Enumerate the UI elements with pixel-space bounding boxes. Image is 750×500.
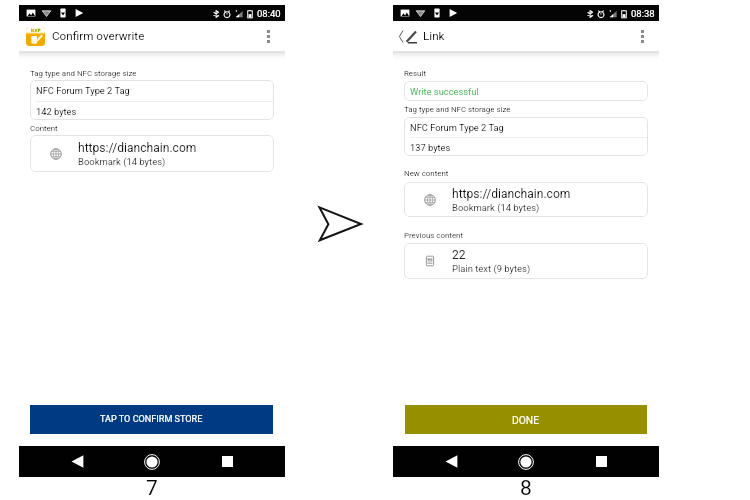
staticText: 8 xyxy=(520,476,532,497)
staticText: https://dianchain.com xyxy=(78,141,197,155)
staticText: Previous content xyxy=(404,231,464,240)
button[interactable]: Back and edit xyxy=(398,24,420,48)
staticText: Plain text (9 bytes) xyxy=(452,263,531,274)
button[interactable]: Recents xyxy=(576,446,626,477)
staticText: 08:38 xyxy=(631,8,655,19)
button[interactable]: More options xyxy=(630,22,654,50)
staticText: New content xyxy=(404,169,449,178)
button[interactable]: https://dianchain.com xyxy=(404,182,648,217)
staticText: Content xyxy=(30,124,58,133)
staticText: NFC Forum Type 2 Tag xyxy=(36,85,130,96)
button[interactable]: Home xyxy=(127,446,177,477)
staticText: Confirm overwrite xyxy=(52,29,145,43)
button[interactable]: Write successful xyxy=(404,81,648,101)
button[interactable]: DONE xyxy=(405,405,647,434)
staticText: 142 bytes xyxy=(36,106,77,117)
staticText: Bookmark (14 bytes) xyxy=(78,156,166,167)
button[interactable]: Home xyxy=(501,446,551,477)
staticText: DONE xyxy=(512,414,540,426)
button[interactable]: Back xyxy=(52,446,102,477)
staticText: 7 xyxy=(146,476,158,497)
button[interactable]: Back xyxy=(426,446,476,477)
staticText: Tag type and NFC storage size xyxy=(404,105,511,114)
button[interactable]: Recents xyxy=(202,446,252,477)
staticText: Bookmark (14 bytes) xyxy=(452,202,540,213)
button[interactable]: https://dianchain.com xyxy=(30,135,274,172)
staticText: TAP TO CONFIRM STORE xyxy=(100,414,203,425)
staticText: Write successful xyxy=(410,86,479,97)
staticText: Tag type and NFC storage size xyxy=(30,69,137,78)
button[interactable]: TAP TO CONFIRM STORE xyxy=(30,405,273,434)
button[interactable]: More options xyxy=(256,22,280,50)
staticText: Result xyxy=(404,69,426,78)
button[interactable]: NFC Forum Type 2 Tag xyxy=(404,117,648,156)
staticText: https://dianchain.com xyxy=(452,187,571,201)
button[interactable]: 22 xyxy=(404,243,648,279)
staticText: 137 bytes xyxy=(410,142,451,153)
staticText: 22 xyxy=(452,248,466,262)
staticText: Link xyxy=(423,29,445,43)
staticText: 08:40 xyxy=(257,8,281,19)
button[interactable]: NFC Forum Type 2 Tag xyxy=(30,80,274,120)
staticText: NFC Forum Type 2 Tag xyxy=(410,122,504,133)
